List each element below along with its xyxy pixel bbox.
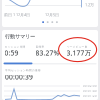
staticText: 83.27% (35, 48, 59, 57)
staticText: 平均セッション時間の推移 (5, 69, 41, 72)
button[interactable]: セッション時間 (4, 45, 35, 58)
staticText: ページビュー数 (66, 45, 87, 48)
staticText: 12月5日 (45, 12, 59, 17)
staticText: 00:01:40 (83, 89, 97, 93)
staticText: 行動サマリー (5, 33, 35, 40)
staticText: 1.2万 (85, 2, 94, 7)
staticText: セッション時間 (4, 45, 25, 48)
staticText: 3,177万 (66, 48, 91, 57)
staticText: 00:00:39 (5, 73, 33, 81)
button[interactable]: ページビュー数 (66, 45, 97, 58)
button[interactable]: 直帰率 (35, 45, 66, 58)
staticText: 00:02:00 (83, 84, 97, 88)
staticText: 前日 1 12月4日 (4, 12, 30, 17)
staticText: 直帰率 (35, 45, 44, 48)
staticText: 00:01:20 (83, 94, 97, 98)
staticText: 0:59 (4, 48, 18, 57)
